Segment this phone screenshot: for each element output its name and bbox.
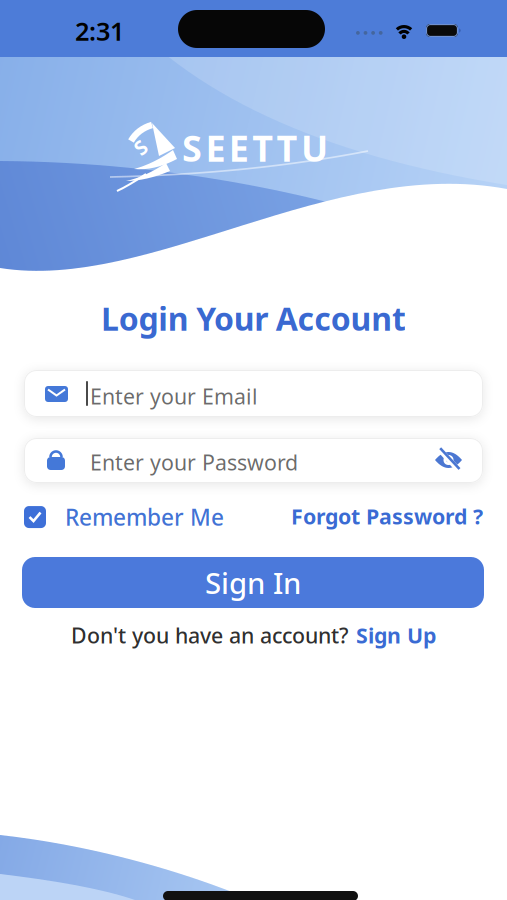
button[interactable]: Enter your Password [24, 438, 483, 483]
button[interactable]: Remember Me [24, 502, 224, 532]
staticText: S [135, 134, 146, 161]
button[interactable]: Sign In [22, 557, 484, 608]
staticText: E [205, 124, 225, 172]
staticText: Forgot Password ? [291, 502, 483, 530]
staticText: T [277, 124, 298, 172]
staticText: Enter your Password [90, 448, 298, 476]
button[interactable]: Show password [435, 450, 463, 470]
staticText: Sign Up [356, 621, 436, 649]
button[interactable]: Sign Up [356, 621, 436, 649]
staticText: 2:31 [75, 14, 124, 48]
button[interactable]: Enter your Email [24, 370, 483, 417]
staticText: E [229, 124, 249, 172]
staticText: Don't you have an account? [71, 621, 349, 649]
staticText: Sign In [205, 563, 301, 602]
staticText: Enter your Email [90, 382, 258, 410]
button[interactable]: Forgot Password ? [291, 502, 483, 530]
staticText: Remember Me [65, 502, 224, 532]
staticText: S [182, 124, 202, 172]
staticText: T [252, 124, 273, 172]
staticText: Login Your Account [101, 297, 406, 339]
staticText: U [301, 124, 328, 172]
